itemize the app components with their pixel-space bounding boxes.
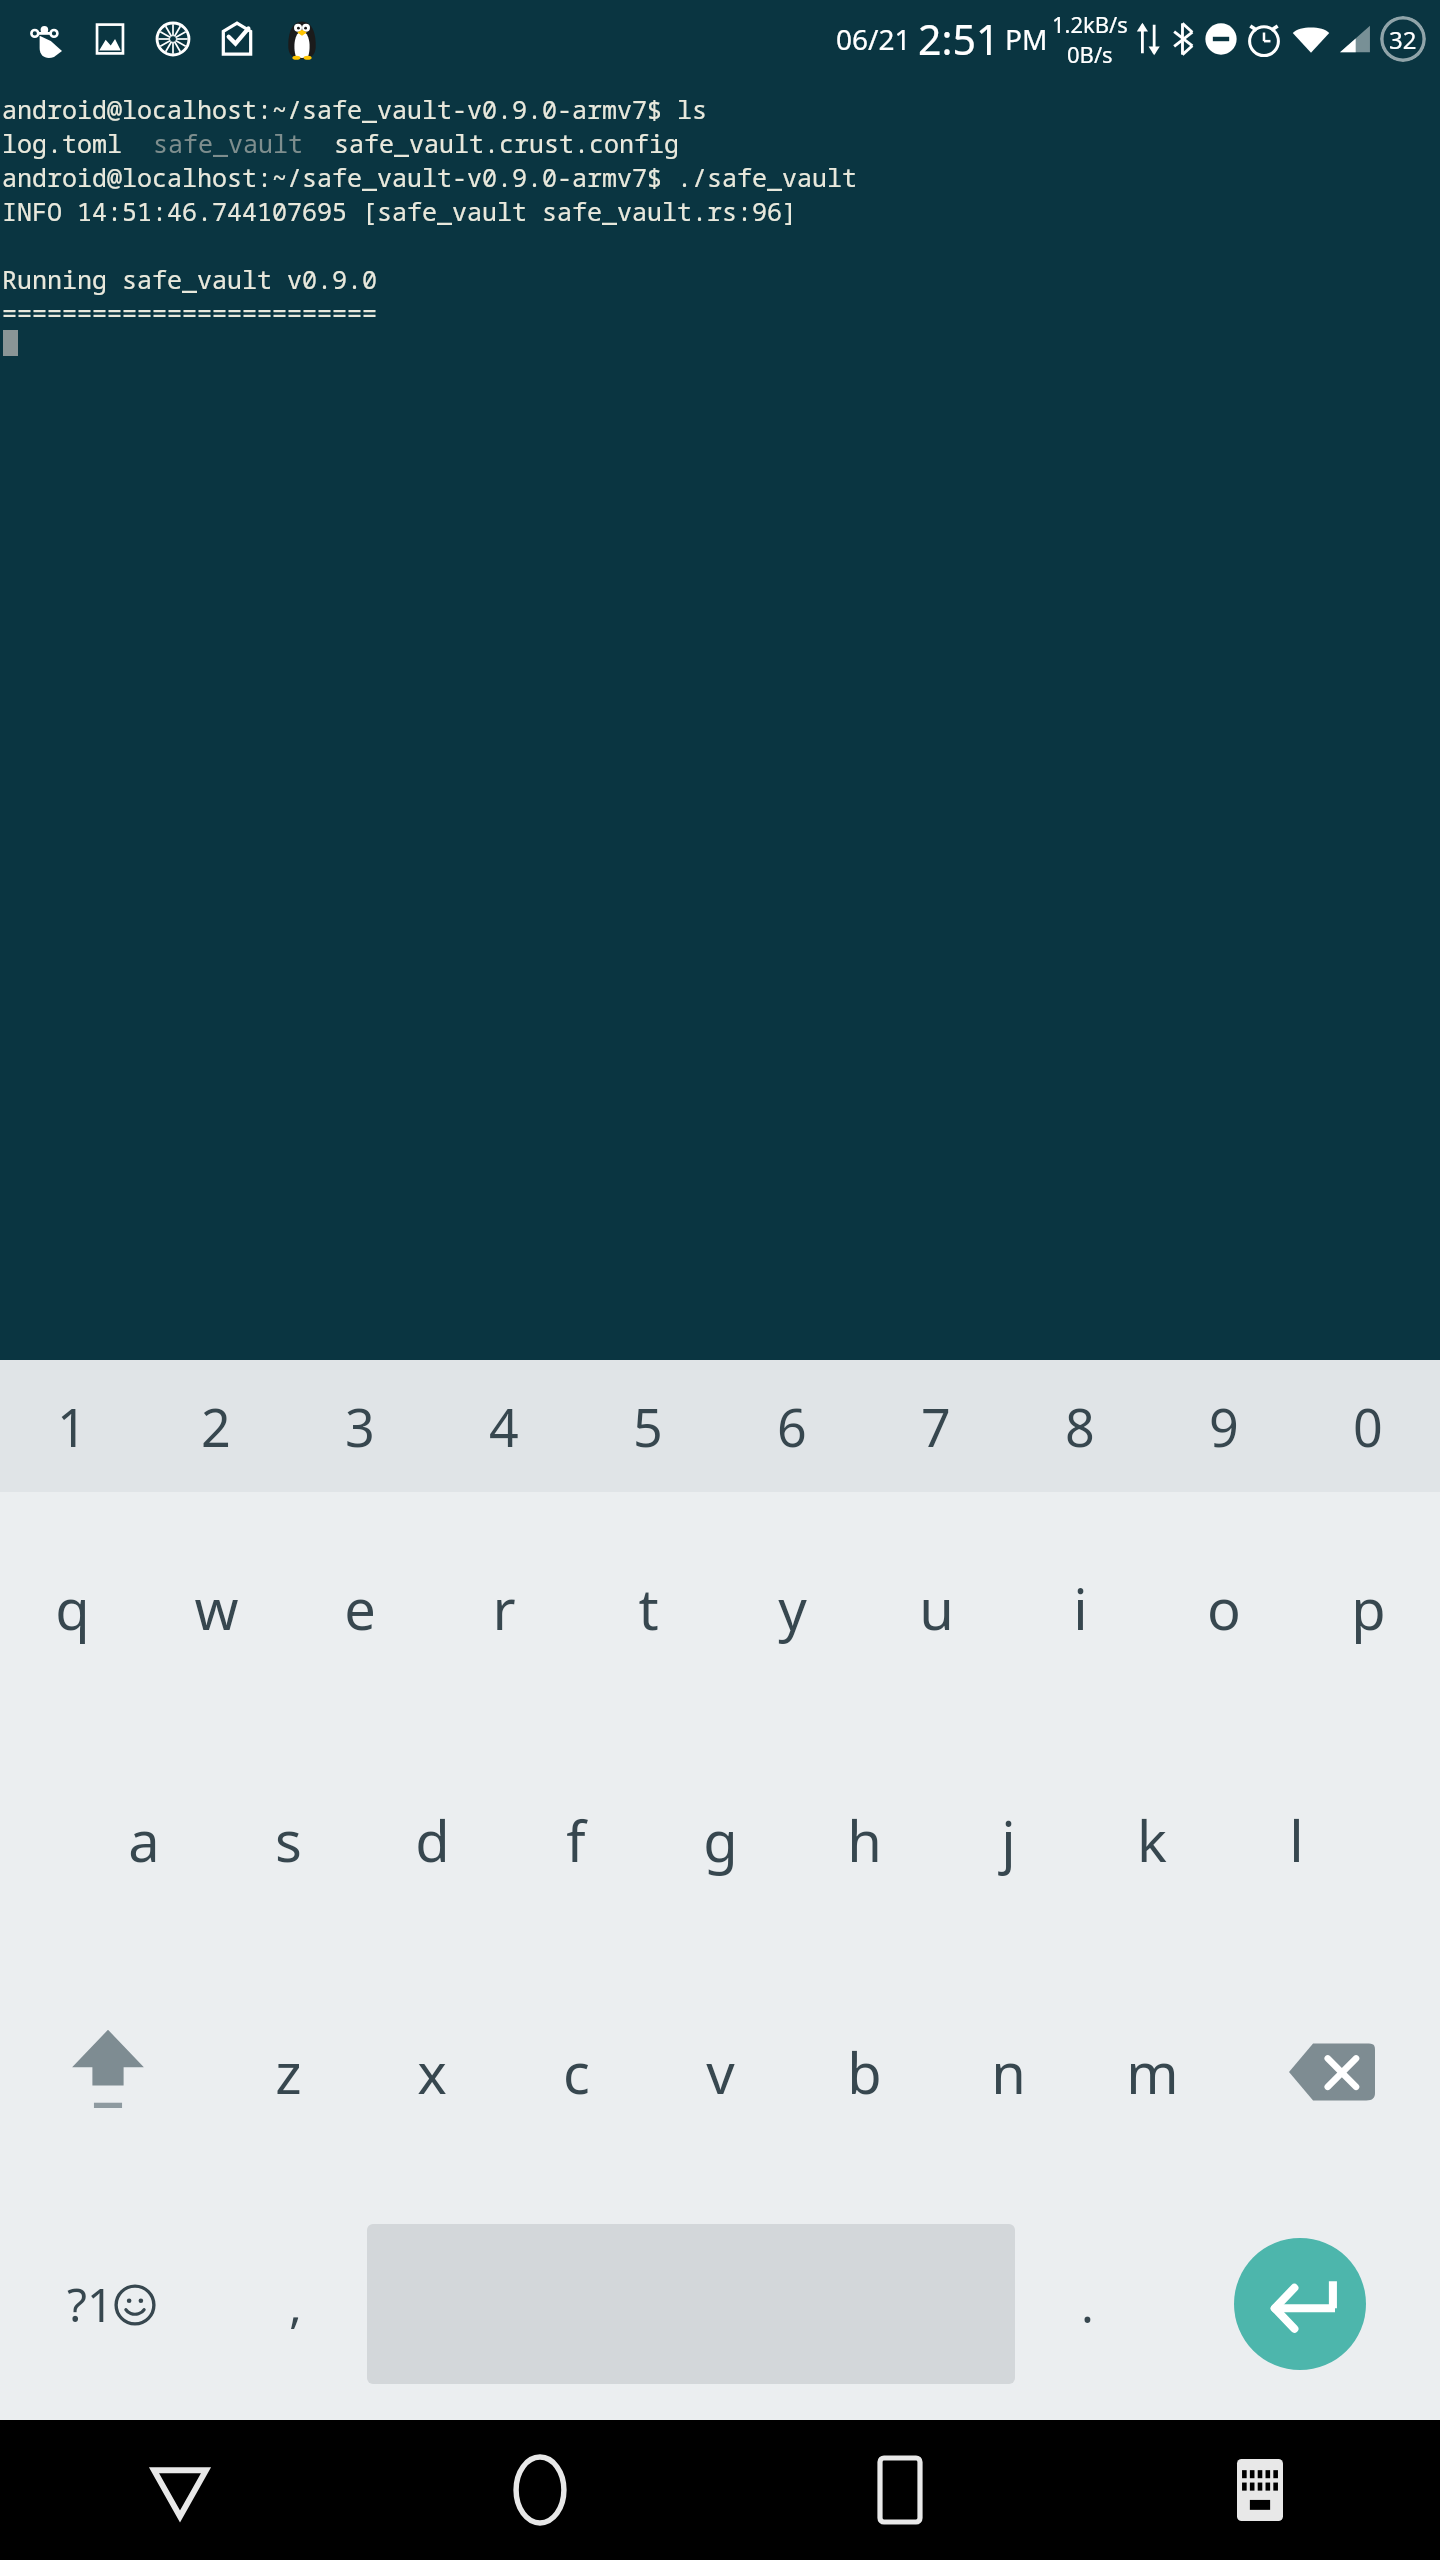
button[interactable]: Back (0, 2420, 360, 2560)
staticText: ========================= (2, 296, 378, 330)
button[interactable]: g (648, 1724, 792, 1956)
staticText: 9 (1209, 1391, 1239, 1462)
button[interactable]: a (72, 1724, 216, 1956)
button[interactable]: m (1080, 1956, 1224, 2188)
button[interactable]: Recent apps (720, 2420, 1080, 2560)
button[interactable]: d (360, 1724, 504, 1956)
staticText: q (55, 1570, 90, 1646)
staticText: k (1137, 1802, 1167, 1878)
staticText: 0 (1353, 1391, 1383, 1462)
button[interactable]: v (648, 1956, 792, 2188)
staticText: 4 (489, 1391, 519, 1462)
staticText: 5 (633, 1391, 663, 1462)
button[interactable]: Enter (1159, 2188, 1440, 2420)
staticText: c (563, 2034, 590, 2110)
staticText: 6 (777, 1391, 807, 1462)
button[interactable]: Switch keyboard (1080, 2420, 1440, 2560)
button[interactable]: j (936, 1724, 1080, 1956)
staticText: e (344, 1570, 376, 1646)
staticText: f (566, 1802, 586, 1878)
staticText: 2:51 (918, 11, 1000, 67)
staticText: p (1351, 1570, 1386, 1646)
button[interactable]: f (504, 1724, 648, 1956)
staticText: log.toml (2, 126, 153, 160)
staticText: . (1081, 2272, 1094, 2337)
staticText: v (706, 2034, 735, 2110)
button[interactable]: y (720, 1492, 864, 1724)
button[interactable]: Backspace (1224, 1956, 1440, 2188)
staticText: ?1 (67, 2273, 114, 2336)
staticText: a (128, 1802, 160, 1878)
button[interactable]: h (792, 1724, 936, 1956)
button[interactable]: k (1080, 1724, 1224, 1956)
button[interactable]: 3 (288, 1360, 432, 1492)
staticText: 0B/s (1067, 39, 1113, 69)
staticText: 1.2kB/s (1052, 9, 1128, 39)
staticText: 8 (1065, 1391, 1095, 1462)
button[interactable]: x (360, 1956, 504, 2188)
button[interactable]: Symbols and emoji (0, 2188, 223, 2420)
button[interactable]: c (504, 1956, 648, 2188)
button[interactable]: o (1152, 1492, 1296, 1724)
staticText: 32 (1389, 23, 1417, 56)
staticText: t (638, 1570, 659, 1646)
staticText: d (415, 1802, 450, 1878)
staticText: safe_vault (153, 126, 304, 160)
staticText: b (847, 2034, 882, 2110)
button[interactable]: i (1008, 1492, 1152, 1724)
button[interactable]: r (432, 1492, 576, 1724)
button[interactable]: l (1224, 1724, 1368, 1956)
staticText: g (703, 1802, 738, 1878)
button[interactable]: . (1015, 2188, 1159, 2420)
button[interactable]: 5 (576, 1360, 720, 1492)
staticText: 7 (921, 1391, 951, 1462)
staticText: Running safe_vault v0.9.0 (2, 262, 378, 296)
staticText: r (492, 1570, 516, 1646)
staticText: , (289, 2272, 302, 2337)
staticText: 2 (201, 1391, 231, 1462)
button[interactable]: s (216, 1724, 360, 1956)
button[interactable]: 0 (1296, 1360, 1440, 1492)
button[interactable]: 1 (0, 1360, 144, 1492)
button[interactable]: w (144, 1492, 288, 1724)
button[interactable]: 8 (1008, 1360, 1152, 1492)
button[interactable]: 6 (720, 1360, 864, 1492)
staticText: 3 (345, 1391, 375, 1462)
button[interactable]: t (576, 1492, 720, 1724)
button[interactable]: b (792, 1956, 936, 2188)
staticText: j (1001, 1802, 1016, 1878)
button[interactable]: , (223, 2188, 367, 2420)
staticText: s (275, 1802, 302, 1878)
staticText: INFO 14:51:46.744107695 [safe_vault safe… (2, 194, 798, 228)
staticText: android@localhost:~/safe_vault-v0.9.0-ar… (2, 92, 708, 126)
staticText: y (778, 1570, 807, 1646)
staticText: u (919, 1570, 954, 1646)
button[interactable]: n (936, 1956, 1080, 2188)
button[interactable]: q (0, 1492, 144, 1724)
button[interactable]: Home (360, 2420, 720, 2560)
button[interactable]: p (1296, 1492, 1440, 1724)
staticText: l (1289, 1802, 1304, 1878)
button[interactable]: Shift (0, 1956, 216, 2188)
button[interactable]: u (864, 1492, 1008, 1724)
staticText: 06/21 (836, 20, 911, 58)
staticText: o (1207, 1570, 1241, 1646)
staticText: 1 (57, 1391, 87, 1462)
staticText: w (194, 1570, 239, 1646)
button[interactable]: z (216, 1956, 360, 2188)
button[interactable]: 2 (144, 1360, 288, 1492)
staticText: safe_vault.crust.config (304, 126, 680, 160)
staticText: PM (1005, 20, 1048, 58)
staticText: i (1073, 1570, 1088, 1646)
staticText: z (275, 2034, 302, 2110)
button[interactable]: 4 (432, 1360, 576, 1492)
staticText: x (417, 2034, 447, 2110)
staticText: n (991, 2034, 1026, 2110)
button[interactable]: e (288, 1492, 432, 1724)
button[interactable]: 9 (1152, 1360, 1296, 1492)
staticText: android@localhost:~/safe_vault-v0.9.0-ar… (2, 160, 858, 194)
button[interactable]: 7 (864, 1360, 1008, 1492)
staticText: m (1126, 2034, 1179, 2110)
staticText: h (847, 1802, 882, 1878)
